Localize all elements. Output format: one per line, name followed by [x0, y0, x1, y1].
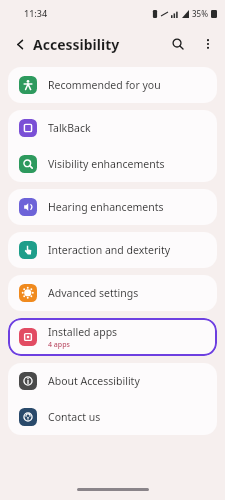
button[interactable]: Back — [6, 30, 34, 58]
button[interactable]: Search — [163, 29, 193, 59]
button[interactable]: About Accessibility — [8, 363, 217, 399]
button[interactable]: Installed apps — [8, 318, 217, 356]
staticText: Interaction and dexterity — [48, 243, 171, 257]
staticText: Installed apps — [48, 325, 118, 339]
staticText: Visibility enhancements — [48, 157, 165, 171]
button[interactable]: Interaction and dexterity — [8, 232, 217, 268]
staticText: About Accessibility — [48, 374, 140, 388]
staticText: TalkBack — [48, 121, 91, 135]
staticText: 35% — [192, 8, 208, 19]
staticText: Contact us — [48, 410, 101, 424]
button[interactable]: Visibility enhancements — [8, 146, 217, 182]
button[interactable]: Advanced settings — [8, 275, 217, 311]
staticText: 11:34 — [24, 7, 48, 19]
button[interactable]: More options — [193, 29, 223, 59]
staticText: Recommended for you — [48, 78, 161, 92]
button[interactable]: TalkBack — [8, 110, 217, 146]
staticText: 4 apps — [48, 340, 70, 350]
staticText: Accessibility — [33, 35, 120, 54]
button[interactable]: Hearing enhancements — [8, 189, 217, 225]
staticText: Hearing enhancements — [48, 200, 164, 214]
button[interactable]: Contact us — [8, 399, 217, 435]
staticText: Advanced settings — [48, 286, 139, 300]
button[interactable]: Recommended for you — [8, 67, 217, 103]
